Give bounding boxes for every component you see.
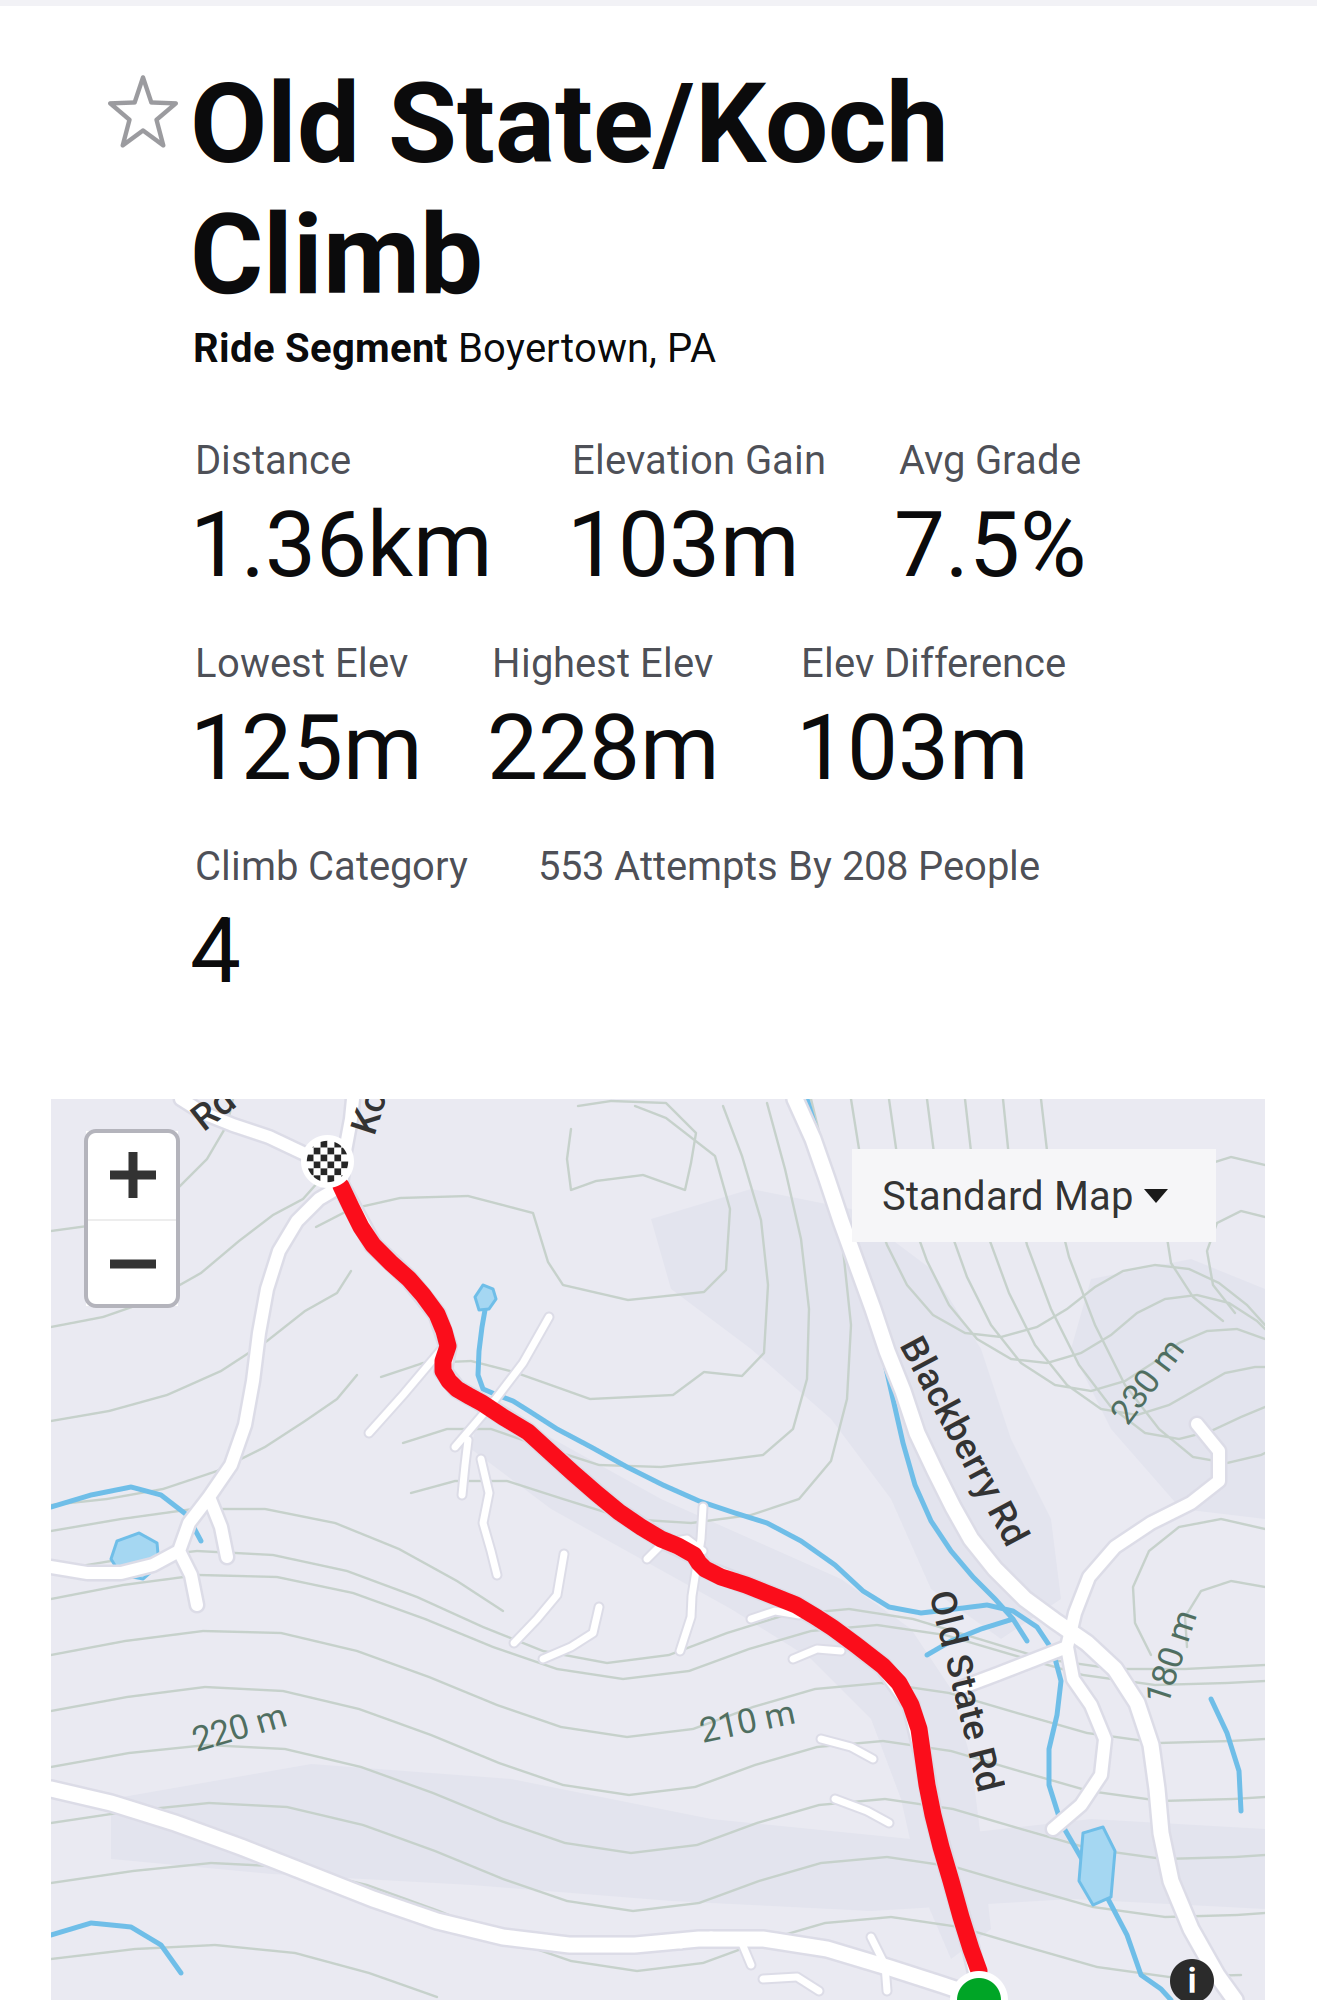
button[interactable]: Standard Map (852, 1149, 1216, 1242)
staticText: 4 (190, 898, 241, 1004)
staticText: Boyertown, PA (458, 325, 716, 372)
staticText: Blackberry Rd (849, 1419, 1080, 1463)
staticText: Highest Elev (492, 640, 713, 687)
staticText: 180 m (1123, 1637, 1219, 1678)
button[interactable]: Zoom out (86, 1221, 178, 1306)
staticText: 125m (190, 695, 423, 801)
staticText: 103m (796, 695, 1029, 801)
staticText: Climb Category (195, 843, 468, 890)
staticText: Standard Map (882, 1173, 1133, 1220)
staticText: 553 Attempts By 208 People (538, 843, 1040, 890)
staticText: Avg Grade (899, 437, 1081, 484)
staticText: Rd (191, 1087, 235, 1131)
staticText: 103m (567, 492, 800, 598)
button[interactable]: Favorite segment (107, 77, 183, 155)
staticText: 230 m (1099, 1361, 1195, 1402)
button[interactable]: Zoom in (86, 1131, 178, 1219)
staticText: 228m (487, 695, 720, 801)
staticText: Ride Segment (193, 325, 458, 372)
staticText: Old State/Koch Climb (190, 58, 949, 320)
staticText: Koch (333, 1071, 417, 1115)
button[interactable]: Map information (1170, 1959, 1214, 2000)
staticText: 7.5% (894, 492, 1086, 598)
staticText: Elev Difference (801, 640, 1066, 687)
staticText: i (1187, 1961, 1196, 2000)
staticText: Distance (195, 437, 351, 484)
staticText: 1.36km (190, 492, 493, 598)
staticText: 210 m (699, 1701, 795, 1742)
staticText: 220 m (191, 1707, 287, 1748)
staticText: Old State Rd (863, 1669, 1069, 1713)
staticText: Elevation Gain (572, 437, 826, 484)
staticText: Lowest Elev (195, 640, 408, 687)
